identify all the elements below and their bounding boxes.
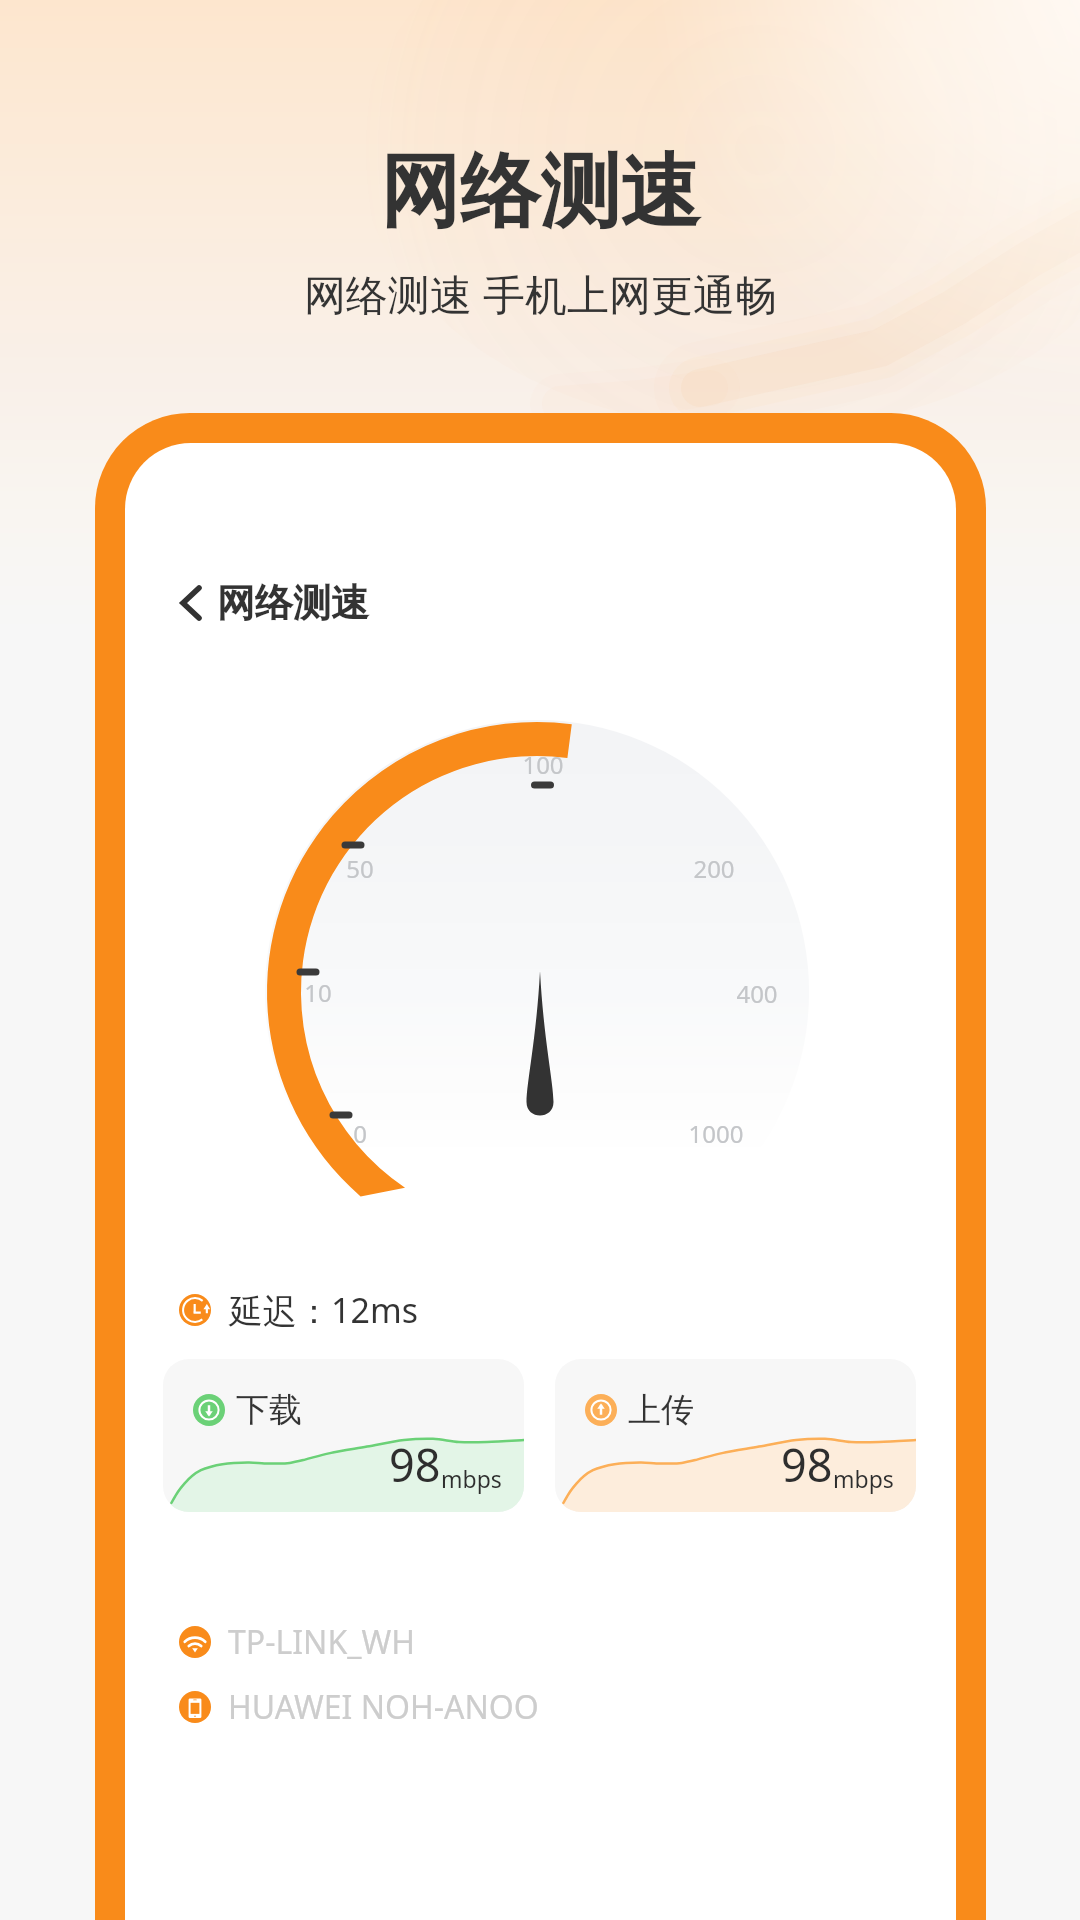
staticText: mbps bbox=[833, 1463, 894, 1494]
button[interactable]: 下载 bbox=[163, 1359, 524, 1512]
staticText: 98 bbox=[389, 1434, 441, 1495]
staticText: 网络测速 bbox=[380, 142, 700, 243]
button[interactable]: HUAWEI NOH-ANOO bbox=[173, 1681, 545, 1733]
staticText: 下载 bbox=[236, 1389, 302, 1431]
button[interactable]: 上传 bbox=[555, 1359, 916, 1512]
staticText: 100 bbox=[503, 748, 583, 781]
other: 返回 bbox=[181, 586, 201, 620]
staticText: 网络测速 手机上网更通畅 bbox=[304, 265, 777, 322]
button[interactable]: TP-LINK_WH bbox=[173, 1616, 421, 1668]
staticText: HUAWEI NOH-ANOO bbox=[228, 1685, 539, 1729]
staticText: 延迟：12ms bbox=[229, 1287, 418, 1333]
staticText: 50 bbox=[320, 852, 400, 885]
staticText: 10 bbox=[278, 976, 358, 1009]
staticText: mbps bbox=[441, 1463, 502, 1494]
button[interactable]: 返回 bbox=[175, 571, 375, 635]
staticText: 上传 bbox=[628, 1389, 694, 1431]
staticText: 1000 bbox=[676, 1117, 756, 1150]
staticText: 200 bbox=[674, 852, 754, 885]
staticText: 400 bbox=[717, 977, 797, 1010]
staticText: 0 bbox=[320, 1117, 400, 1150]
staticText: 98 bbox=[781, 1434, 833, 1495]
staticText: 网络测速 bbox=[217, 579, 369, 627]
staticText: TP-LINK_WH bbox=[228, 1620, 415, 1664]
button[interactable]: 延迟：12ms bbox=[173, 1282, 424, 1338]
